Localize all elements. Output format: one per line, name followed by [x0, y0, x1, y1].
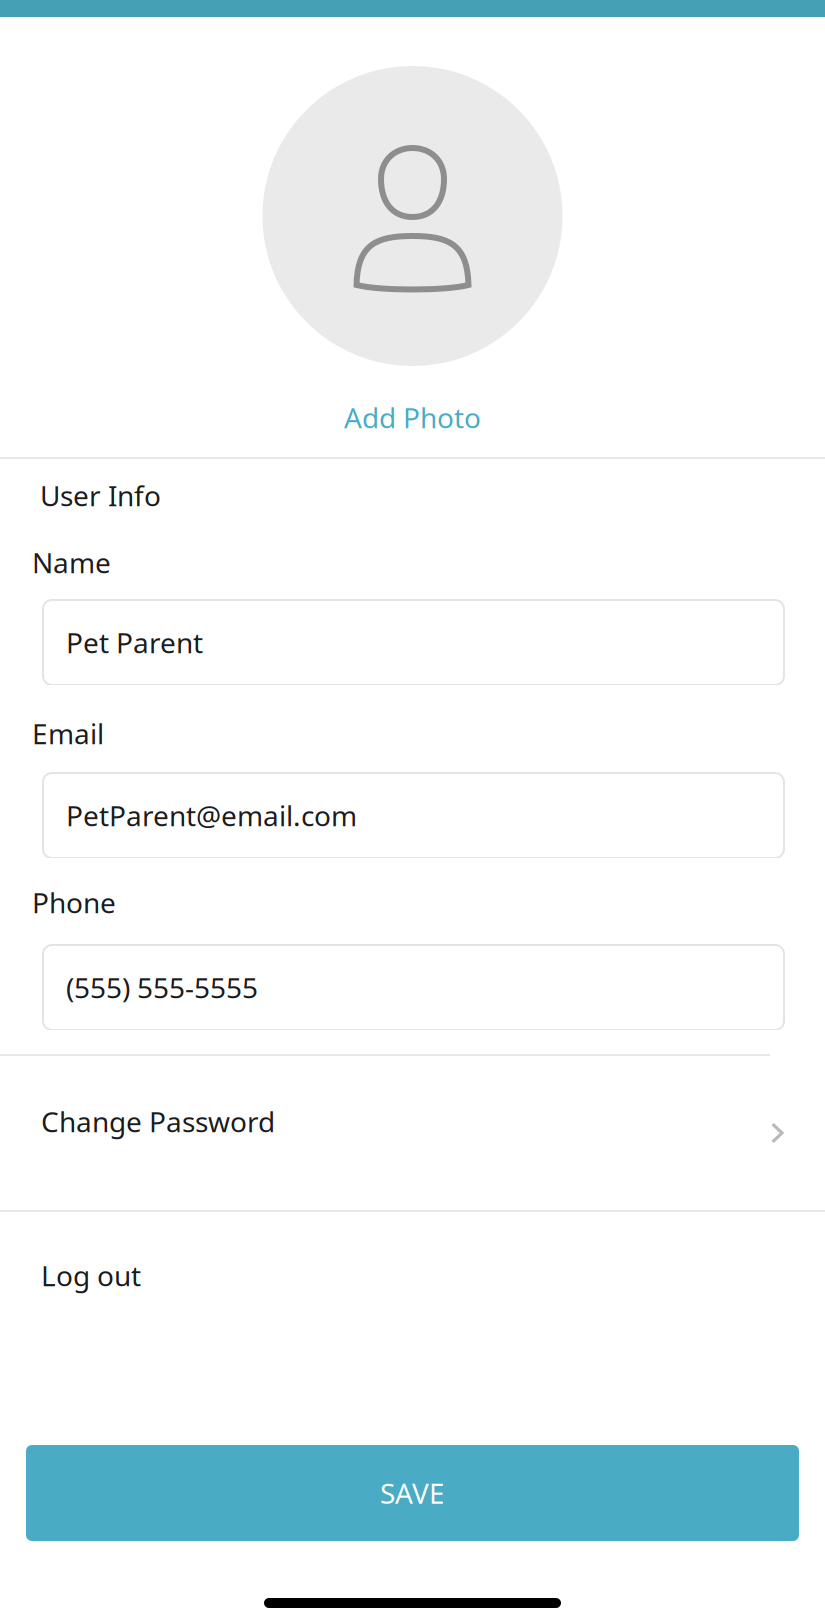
staticText: Change Password — [41, 1103, 275, 1140]
button[interactable]: PetParent@email.com — [43, 773, 784, 858]
button[interactable]: SAVE — [26, 1445, 799, 1541]
staticText: Pet Parent — [66, 624, 203, 661]
button[interactable]: Log out — [0, 1212, 825, 1342]
staticText: Name — [32, 544, 111, 581]
staticText: Email — [32, 715, 104, 752]
staticText: Log out — [41, 1257, 141, 1294]
staticText: Phone — [32, 884, 116, 921]
staticText: PetParent@email.com — [66, 797, 357, 834]
button[interactable]: Add Photo — [0, 66, 825, 436]
button[interactable]: Pet Parent — [43, 600, 784, 685]
button[interactable]: (555) 555-5555 — [43, 945, 784, 1030]
staticText: SAVE — [380, 1474, 445, 1512]
staticText: Add Photo — [344, 399, 481, 436]
button[interactable]: Change Password — [0, 1056, 825, 1210]
staticText: (555) 555-5555 — [66, 969, 258, 1006]
staticText: User Info — [40, 477, 161, 514]
